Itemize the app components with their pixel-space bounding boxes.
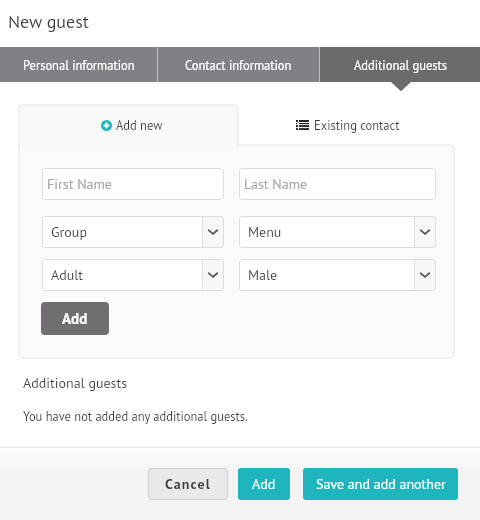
button[interactable]: Contact information (158, 47, 319, 82)
button[interactable]: Existing contact (238, 105, 454, 146)
button[interactable]: Menu (239, 216, 436, 248)
staticText: Cancel (165, 475, 211, 493)
button[interactable]: Male (239, 259, 436, 291)
staticText: First Name (47, 175, 112, 193)
staticText: Additional guests (354, 57, 447, 73)
button[interactable]: Save and add another (303, 468, 458, 500)
button[interactable]: Last Name (239, 168, 436, 200)
staticText: Group (51, 223, 87, 241)
button[interactable]: Adult (42, 259, 224, 291)
button[interactable]: Additional guests (320, 47, 480, 82)
button[interactable]: First Name (42, 168, 224, 200)
staticText: Add (62, 309, 88, 328)
staticText: Adult (51, 266, 84, 284)
staticText: You have not added any additional guests… (23, 408, 248, 424)
staticText: Menu (248, 223, 282, 241)
staticText: Last Name (244, 175, 308, 193)
other: Open Male menu (414, 259, 436, 291)
other: Open Group menu (202, 216, 224, 248)
staticText: Personal information (23, 57, 135, 73)
staticText: Add new (116, 117, 163, 133)
other: Open Menu menu (414, 216, 436, 248)
staticText: Add (252, 475, 276, 493)
staticText: Additional guests (23, 374, 128, 392)
button[interactable]: Cancel (148, 468, 228, 500)
staticText: Existing contact (314, 117, 400, 133)
button[interactable]: Add (238, 468, 290, 500)
button[interactable]: Personal information (0, 47, 157, 82)
button[interactable]: Group (42, 216, 224, 248)
button[interactable]: Add new (19, 105, 238, 146)
staticText: Contact information (185, 57, 292, 73)
staticText: New guest (8, 10, 89, 33)
other: Open Adult menu (202, 259, 224, 291)
button[interactable]: Add (41, 302, 109, 335)
staticText: Save and add another (316, 475, 446, 493)
staticText: Male (248, 266, 278, 284)
